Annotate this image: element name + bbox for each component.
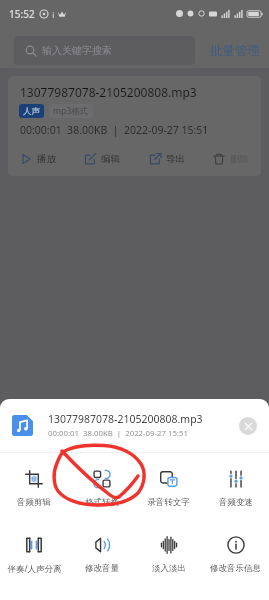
- staticText: 00:00:01 38.00KB | 2022-09-27 15:51: [20, 123, 209, 137]
- staticText: 播放: [37, 153, 56, 165]
- staticText: 修改音乐信息: [210, 563, 261, 574]
- button[interactable]: 批量管理: [210, 37, 260, 65]
- staticText: 人声: [23, 106, 40, 117]
- staticText: 13077987078-2105200808.mp3: [20, 84, 197, 100]
- staticText: 15:52: [9, 7, 35, 21]
- button[interactable]: 13077987078-2105200808.mp3: [8, 76, 261, 176]
- staticText: 批量管理: [210, 43, 260, 59]
- button[interactable]: 音频剪辑: [0, 470, 68, 508]
- button[interactable]: 输入关键字搜索: [14, 36, 195, 65]
- staticText: 格式转换: [85, 497, 119, 508]
- staticText: 淡入淡出: [152, 563, 186, 574]
- staticText: 输入关键字搜索: [42, 44, 112, 57]
- button[interactable]: 播放: [20, 151, 56, 167]
- button[interactable]: 删除: [213, 151, 249, 167]
- button[interactable]: 格式转换: [68, 470, 135, 508]
- staticText: mp3格式: [53, 105, 89, 117]
- staticText: 删除: [230, 153, 249, 165]
- button[interactable]: 修改音量: [68, 536, 135, 574]
- button[interactable]: Close: [239, 417, 257, 435]
- staticText: ℹ: [52, 9, 55, 20]
- staticText: 伴奏/人声分离: [7, 563, 62, 575]
- button[interactable]: 修改音乐信息: [202, 536, 269, 574]
- button[interactable]: 音频变速: [202, 470, 269, 508]
- button[interactable]: 录音转文字: [135, 470, 202, 508]
- staticText: 录音转文字: [147, 497, 190, 508]
- staticText: 13077987078-2105200808.mp3: [48, 412, 203, 426]
- staticText: 导出: [166, 153, 185, 165]
- staticText: 音频剪辑: [17, 497, 51, 508]
- staticText: 00:00:01 38.00KB | 2022-09-27 15:51: [48, 428, 188, 439]
- staticText: 音频变速: [219, 497, 253, 508]
- button[interactable]: 淡入淡出: [135, 536, 202, 574]
- button[interactable]: 伴奏/人声分离: [0, 536, 68, 575]
- staticText: 编辑: [101, 153, 120, 165]
- staticText: 修改音量: [85, 563, 119, 574]
- button[interactable]: 导出: [149, 151, 185, 167]
- button[interactable]: 编辑: [84, 151, 120, 167]
